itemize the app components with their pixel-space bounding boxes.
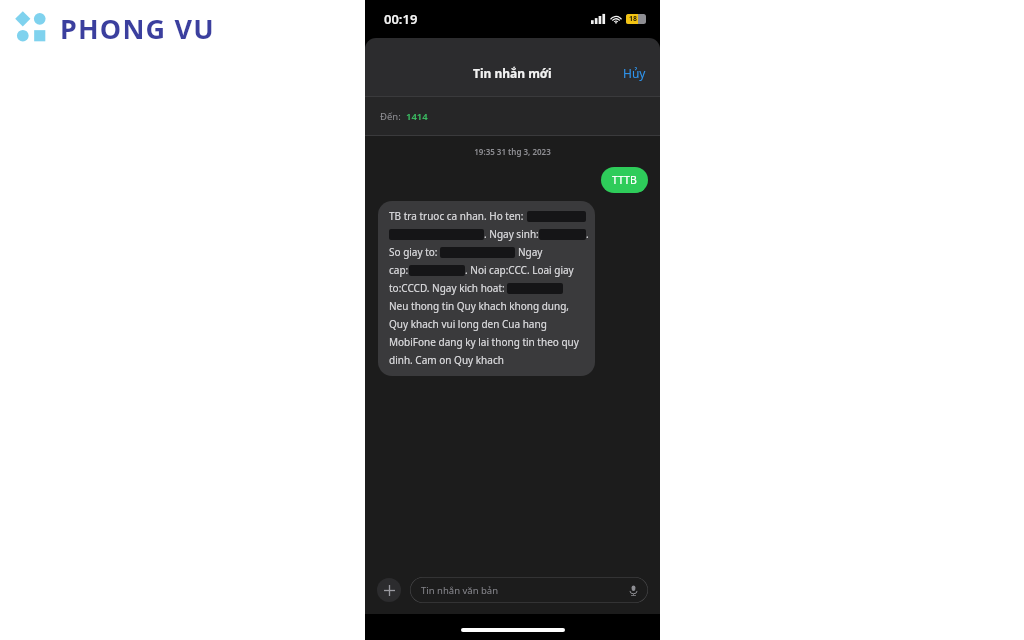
staticText: So giay to:: [389, 245, 438, 259]
staticText: Tin nhắn văn bản: [421, 584, 499, 597]
button[interactable]: TB tra truoc ca nhan. Ho ten:: [378, 201, 595, 376]
staticText: Đến:: [380, 110, 401, 123]
staticText: to:CCCD. Ngay kich hoat:: [389, 281, 505, 295]
staticText: PHONG VU: [60, 10, 215, 47]
button[interactable]: Hủy: [609, 59, 660, 87]
staticText: TB tra truoc ca nhan. Ho ten:: [389, 209, 524, 223]
staticText: 19:35 31 thg 3, 2023: [365, 146, 660, 157]
staticText: dinh. Cam on Quy khach: [389, 353, 504, 367]
button[interactable]: Tin nhắn văn bản: [410, 577, 648, 603]
button[interactable]: TTTB: [601, 167, 648, 193]
staticText: TTTB: [612, 173, 637, 187]
staticText: . Ngay sinh:: [484, 227, 539, 241]
staticText: . Noi cap:CCC. Loai giay: [465, 263, 574, 277]
staticText: 18: [629, 14, 638, 24]
staticText: 00:19: [384, 10, 418, 28]
staticText: Ngay: [518, 245, 543, 259]
staticText: MobiFone dang ky lai thong tin theo quy: [389, 335, 579, 349]
button[interactable]: Add attachment: [377, 578, 401, 602]
staticText: Hủy: [623, 65, 646, 81]
staticText: 1414: [406, 110, 428, 123]
staticText: Quy khach vui long den Cua hang: [389, 317, 547, 331]
staticText: Tin nhắn mới: [473, 65, 552, 81]
staticText: Neu thong tin Quy khach khong dung,: [389, 299, 569, 313]
button[interactable]: Voice input: [625, 582, 641, 598]
button[interactable]: Đến:: [365, 97, 660, 135]
staticText: cap:: [389, 263, 409, 277]
